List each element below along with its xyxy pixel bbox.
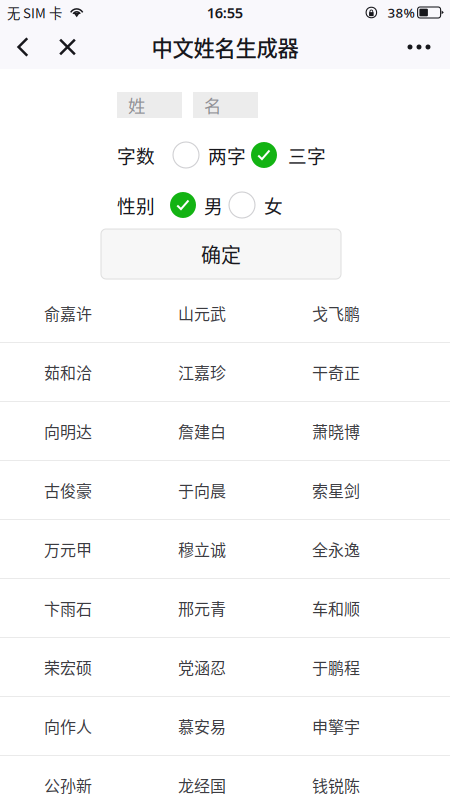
button[interactable]: 茹和洽 [10,343,144,401]
staticText: 确定 [201,239,241,268]
staticText: 向明达 [44,419,92,443]
button[interactable]: 穆立诚 [144,520,278,578]
staticText: 钱锐陈 [312,773,360,797]
button[interactable]: 古俊豪 [10,461,144,519]
staticText: 中文姓名生成器 [151,32,298,62]
button[interactable]: 于向晨 [144,461,278,519]
button[interactable]: 车和顺 [278,579,412,637]
button[interactable]: 詹建白 [144,402,278,460]
staticText: 于鹏程 [312,655,360,679]
staticText: 申擎宇 [312,714,360,738]
staticText: 萧晓博 [312,419,360,443]
staticText: 古俊豪 [44,478,92,502]
button[interactable]: 戈飞鹏 [278,284,412,342]
button[interactable]: 姓 [117,92,182,118]
button[interactable]: 龙经国 [144,756,278,800]
staticText: 党涵忍 [178,655,226,679]
staticText: 干奇正 [312,360,360,384]
staticText: 男 [204,191,223,218]
button[interactable]: 女 [229,191,283,218]
button[interactable]: 两字 [173,141,246,168]
staticText: 名 [204,92,221,118]
staticText: 戈飞鹏 [312,301,360,325]
staticText: 俞嘉许 [44,301,92,325]
staticText: 慕安易 [178,714,226,738]
staticText: 卞雨石 [44,596,92,620]
staticText: 无 SIM 卡 [7,3,62,22]
button[interactable]: More [398,25,440,69]
button[interactable]: 萧晓博 [278,402,412,460]
button[interactable]: 名 [193,92,258,118]
staticText: 女 [264,191,283,218]
button[interactable]: Back [8,25,38,69]
staticText: 荣宏硕 [44,655,92,679]
staticText: 万元甲 [44,537,92,561]
staticText: 三字 [288,141,326,168]
staticText: 穆立诚 [178,537,226,561]
button[interactable]: 钱锐陈 [278,756,412,800]
staticText: 姓 [128,92,145,118]
button[interactable]: 俞嘉许 [10,284,144,342]
button[interactable]: 男 [170,191,223,218]
staticText: 邢元青 [178,596,226,620]
staticText: 公孙新 [44,773,92,797]
button[interactable]: 干奇正 [278,343,412,401]
button[interactable]: 万元甲 [10,520,144,578]
button[interactable]: 于鹏程 [278,638,412,696]
button[interactable]: 荣宏硕 [10,638,144,696]
staticText: 字数 [117,141,155,168]
staticText: 全永逸 [312,537,360,561]
button[interactable]: 慕安易 [144,697,278,755]
staticText: 车和顺 [312,596,360,620]
staticText: 江嘉珍 [178,360,226,384]
button[interactable]: 公孙新 [10,756,144,800]
button[interactable]: 山元武 [144,284,278,342]
staticText: 38% [388,4,415,21]
button[interactable]: 三字 [251,141,326,168]
button[interactable]: 向作人 [10,697,144,755]
staticText: 山元武 [178,301,226,325]
staticText: 于向晨 [178,478,226,502]
staticText: 两字 [208,141,246,168]
button[interactable]: Close [51,25,84,69]
staticText: 索星剑 [312,478,360,502]
staticText: 性别 [117,191,155,218]
button[interactable]: 江嘉珍 [144,343,278,401]
staticText: 龙经国 [178,773,226,797]
button[interactable]: 邢元青 [144,579,278,637]
button[interactable]: 申擎宇 [278,697,412,755]
button[interactable]: 向明达 [10,402,144,460]
staticText: 茹和洽 [44,360,92,384]
staticText: 向作人 [44,714,92,738]
button[interactable]: 全永逸 [278,520,412,578]
button[interactable]: 确定 [101,229,341,279]
staticText: 16:55 [207,3,243,22]
button[interactable]: 卞雨石 [10,579,144,637]
staticText: 詹建白 [178,419,226,443]
button[interactable]: 索星剑 [278,461,412,519]
button[interactable]: 党涵忍 [144,638,278,696]
